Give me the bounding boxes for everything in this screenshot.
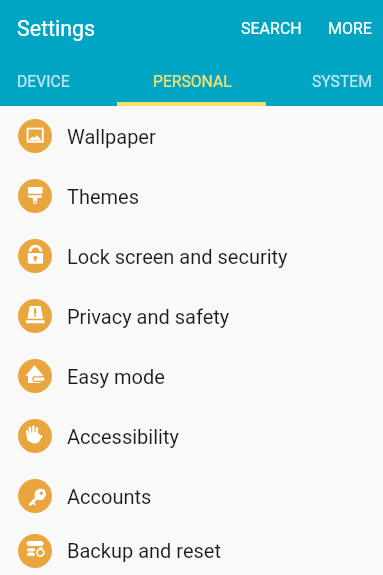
staticText: MORE [328,19,372,38]
button[interactable]: Lock screen and security [0,226,383,286]
staticText: Accessibility [67,425,179,448]
staticText: DEVICE [17,72,70,90]
staticText: Settings [17,16,96,41]
button[interactable]: Backup and reset [0,526,383,575]
staticText: Backup and reset [67,539,221,562]
staticText: SEARCH [241,19,302,38]
button[interactable]: Wallpaper [0,106,383,166]
button[interactable]: Accessibility [0,406,383,466]
button[interactable]: Accounts [0,466,383,526]
button[interactable]: MORE [311,0,383,56]
button[interactable]: PERSONAL [118,56,267,106]
button[interactable]: Easy mode [0,346,383,406]
button[interactable]: Themes [0,166,383,226]
staticText: Privacy and safety [67,305,230,328]
staticText: PERSONAL [153,72,232,90]
staticText: Accounts [67,485,152,508]
button[interactable]: Privacy and safety [0,286,383,346]
staticText: Easy mode [67,365,165,388]
staticText: Lock screen and security [67,245,288,268]
staticText: Themes [67,185,140,208]
button[interactable]: SEARCH [232,0,311,56]
button[interactable]: DEVICE [0,56,86,106]
staticText: Wallpaper [67,125,156,148]
button[interactable]: SYSTEM [267,56,383,106]
staticText: SYSTEM [312,72,372,90]
